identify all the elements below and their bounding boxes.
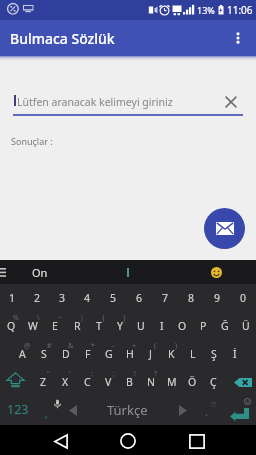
button[interactable]: |: [66, 312, 88, 340]
button[interactable]: Keyboard menu: [0, 260, 18, 284]
staticText: 13%: [197, 4, 215, 16]
staticText: Y: [117, 319, 123, 333]
button[interactable]: Back: [36, 425, 86, 455]
staticText: @: [24, 341, 31, 351]
button[interactable]: }: [109, 312, 130, 340]
button[interactable]: Backspace: [224, 368, 256, 396]
button[interactable]: -: [98, 340, 119, 368]
button[interactable]: &: [55, 340, 77, 368]
staticText: -: [112, 341, 115, 351]
staticText: ": [47, 369, 50, 379]
button[interactable]: @: [11, 340, 33, 368]
button[interactable]: :: [76, 368, 98, 396]
button[interactable]: 2: [25, 284, 50, 312]
button[interactable]: Ç: [203, 368, 224, 396]
staticText: #: [47, 341, 52, 351]
button[interactable]: 123: [0, 396, 38, 425]
button[interactable]: ?: [140, 368, 161, 396]
button[interactable]: Ü: [235, 312, 256, 340]
staticText: G: [105, 347, 113, 361]
button[interactable]: \: [22, 312, 44, 340]
staticText: T: [96, 319, 102, 333]
button[interactable]: +: [119, 340, 140, 368]
staticText: P: [200, 319, 207, 333]
staticText: M: [167, 375, 177, 389]
button[interactable]: Home: [103, 425, 153, 455]
staticText: X: [62, 375, 69, 389]
button[interactable]: P: [193, 312, 214, 340]
button[interactable]: More options: [221, 21, 255, 55]
button[interactable]: Clear text: [219, 90, 243, 114]
button[interactable]: Lütfen aranacak kelimeyi giriniz: [13, 90, 243, 120]
button[interactable]: Shift: [0, 368, 32, 396]
staticText: V: [105, 375, 112, 389]
button[interactable]: .: [200, 396, 226, 425]
button[interactable]: !: [119, 368, 140, 396]
button[interactable]: *: [77, 340, 98, 368]
button[interactable]: ~: [44, 312, 66, 340]
staticText: A: [19, 347, 26, 361]
button[interactable]: Ş: [203, 340, 224, 368]
button[interactable]: 7: [152, 284, 178, 312]
staticText: F: [85, 347, 91, 361]
staticText: R: [74, 319, 81, 333]
button[interactable]: Previous language: [66, 396, 86, 425]
staticText: {: [102, 313, 105, 323]
staticText: ': [69, 369, 71, 379]
button[interactable]: Enter: [226, 396, 256, 425]
button[interactable]: 6: [126, 284, 152, 312]
button[interactable]: 3: [50, 284, 75, 312]
staticText: 2: [34, 291, 41, 305]
staticText: ;: [113, 369, 115, 379]
staticText: %: [13, 313, 19, 323]
button[interactable]: Türkçe: [86, 396, 200, 425]
button[interactable]: 1: [0, 284, 25, 312]
staticText: Türkçe: [107, 401, 148, 419]
button[interactable]: #: [33, 340, 55, 368]
button[interactable]: %: [0, 312, 22, 340]
button[interactable]: L: [182, 340, 203, 368]
staticText: 6: [136, 291, 143, 305]
button[interactable]: U: [130, 312, 151, 340]
button[interactable]: İ: [224, 340, 245, 368]
button[interactable]: M: [161, 368, 182, 396]
staticText: Q: [7, 319, 16, 333]
staticText: On: [32, 265, 48, 280]
staticText: O: [178, 319, 187, 333]
staticText: Ü: [242, 319, 250, 333]
button[interactable]: 5: [100, 284, 126, 312]
staticText: 3: [59, 291, 66, 305]
staticText: 1: [9, 291, 16, 305]
staticText: ): [175, 341, 178, 351]
button[interactable]: ): [161, 340, 182, 368]
button[interactable]: Voice input: [48, 396, 68, 425]
button[interactable]: {: [88, 312, 109, 340]
button[interactable]: 9: [204, 284, 230, 312]
staticText: &: [68, 341, 74, 351]
button[interactable]: ': [54, 368, 76, 396]
button[interactable]: I: [151, 312, 172, 340]
button[interactable]: O: [172, 312, 193, 340]
staticText: 0: [240, 291, 247, 305]
button[interactable]: 8: [178, 284, 204, 312]
button[interactable]: ;: [98, 368, 119, 396]
button[interactable]: Send mail: [204, 208, 245, 249]
button[interactable]: (: [140, 340, 161, 368]
staticText: (: [154, 341, 157, 351]
button[interactable]: 0: [230, 284, 256, 312]
button[interactable]: Ö: [182, 368, 203, 396]
staticText: }: [123, 313, 126, 323]
staticText: ~: [58, 313, 63, 323]
staticText: Ç: [210, 375, 217, 389]
button[interactable]: ": [32, 368, 54, 396]
button[interactable]: Emoji: [209, 265, 223, 279]
button[interactable]: 4: [75, 284, 100, 312]
staticText: E: [52, 319, 58, 333]
staticText: Z: [40, 375, 47, 389]
staticText: 5: [110, 291, 117, 305]
button[interactable]: Recent apps: [171, 425, 221, 455]
button[interactable]: ,: [38, 396, 56, 425]
button[interactable]: Ğ: [214, 312, 235, 340]
staticText: Lütfen aranacak kelimeyi giriniz: [17, 95, 173, 109]
staticText: Bulmaca Sözlük: [10, 29, 115, 48]
